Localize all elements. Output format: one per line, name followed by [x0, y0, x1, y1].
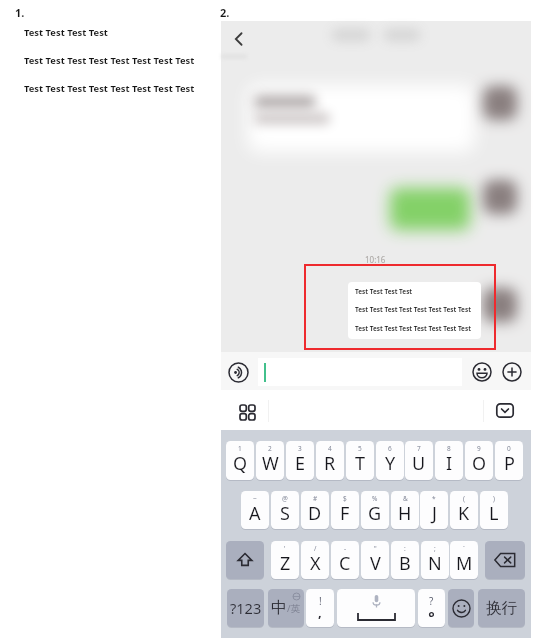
staticText: M — [456, 551, 473, 576]
button[interactable]: 4 — [316, 441, 344, 480]
staticText: 换行 — [486, 598, 517, 618]
button[interactable]: ) — [480, 491, 508, 529]
button[interactable]: Backspace — [485, 541, 525, 579]
staticText: B — [399, 551, 411, 576]
staticText: T — [355, 451, 366, 476]
staticText: ~ — [253, 494, 257, 503]
staticText: Test Test Test Test Test Test Test Test — [355, 324, 471, 333]
button[interactable]: 9 — [465, 441, 493, 480]
staticText: 9 — [477, 444, 481, 453]
button[interactable]: & — [391, 491, 419, 529]
staticText: I — [446, 451, 453, 476]
button[interactable]: 2 — [256, 441, 284, 480]
staticText: F — [340, 501, 350, 526]
staticText: % — [372, 494, 378, 503]
button[interactable]: Enter — [478, 589, 525, 627]
button[interactable]: 1 — [226, 441, 254, 480]
button[interactable]: % — [361, 491, 389, 529]
staticText: V — [370, 551, 381, 576]
button[interactable]: Switch language — [268, 589, 304, 627]
staticText: ? — [429, 594, 434, 608]
button[interactable]: 8 — [435, 441, 463, 480]
button[interactable]: Comma — [306, 589, 334, 627]
staticText: S — [280, 501, 290, 526]
button[interactable]: Emoji — [448, 589, 474, 627]
staticText: @ — [282, 494, 288, 503]
staticText: Test Test Test Test Test Test Test Test — [24, 54, 195, 67]
staticText: ( — [463, 494, 465, 503]
button[interactable]: ' — [271, 541, 299, 579]
staticText: /英 — [287, 602, 301, 615]
staticText: # — [313, 494, 318, 503]
staticText: 2 — [268, 444, 272, 453]
staticText: ; — [434, 544, 436, 553]
button[interactable]: 3 — [286, 441, 314, 480]
staticText: : — [404, 544, 406, 553]
button[interactable]: ( — [450, 491, 478, 529]
button[interactable] — [258, 358, 462, 386]
staticText: 5 — [358, 444, 362, 453]
button[interactable]: Space — [337, 589, 415, 627]
button[interactable]: : — [391, 541, 419, 579]
button[interactable]: More — [502, 362, 522, 382]
button[interactable]: 7 — [405, 441, 433, 480]
staticText: K — [458, 501, 470, 526]
button[interactable]: 0 — [495, 441, 523, 480]
staticText: 0 — [507, 444, 511, 453]
button[interactable]: @ — [271, 491, 299, 529]
button[interactable]: ` — [450, 541, 478, 579]
staticText: 10:16 — [365, 254, 386, 265]
button[interactable]: Hide keyboard — [496, 403, 514, 418]
button[interactable]: Emoji — [472, 362, 492, 382]
staticText: 1. — [15, 5, 25, 20]
button[interactable]: 5 — [346, 441, 374, 480]
staticText: " — [374, 544, 377, 553]
button[interactable]: Shift — [226, 541, 264, 579]
staticText: A — [249, 501, 261, 526]
staticText: 1 — [238, 444, 242, 453]
button[interactable]: / — [301, 541, 329, 579]
staticText: Test Test Test Test — [355, 287, 413, 296]
staticText: / — [314, 544, 317, 553]
staticText: U — [412, 451, 426, 476]
staticText: W — [262, 451, 279, 476]
staticText: H — [398, 501, 412, 526]
staticText: O — [472, 451, 487, 476]
staticText: Test Test Test Test — [24, 26, 108, 39]
button[interactable]: Back — [224, 24, 254, 54]
button[interactable]: " — [361, 541, 389, 579]
staticText: J — [432, 501, 437, 526]
button[interactable]: Apps — [240, 405, 255, 420]
button[interactable]: * — [420, 491, 448, 529]
staticText: ` — [463, 544, 465, 553]
staticText: * — [432, 494, 436, 503]
staticText: D — [308, 501, 322, 526]
staticText: P — [504, 451, 515, 476]
staticText: ?123 — [230, 598, 262, 618]
staticText: Test Test Test Test Test Test Test Test — [355, 305, 471, 314]
button[interactable]: ; — [421, 541, 449, 579]
button[interactable]: Numbers and symbols — [227, 589, 264, 627]
staticText: 6 — [388, 444, 392, 453]
button[interactable]: Voice input — [228, 362, 249, 383]
staticText: & — [403, 494, 408, 503]
staticText: 8 — [447, 444, 451, 453]
staticText: , — [318, 603, 322, 621]
button[interactable]: # — [301, 491, 329, 529]
staticText: $ — [343, 494, 347, 503]
staticText: - — [344, 544, 347, 553]
staticText: 中 — [271, 598, 287, 618]
button[interactable]: 6 — [376, 441, 404, 480]
staticText: R — [324, 451, 336, 476]
staticText: 3 — [298, 444, 302, 453]
button[interactable]: Period — [418, 589, 445, 627]
staticText: Z — [280, 551, 291, 576]
staticText: X — [310, 551, 321, 576]
button[interactable]: $ — [331, 491, 359, 529]
staticText: E — [295, 451, 306, 476]
button[interactable]: - — [331, 541, 359, 579]
staticText: ! — [319, 594, 322, 608]
staticText: ) — [493, 494, 495, 503]
staticText: 2. — [220, 5, 230, 20]
button[interactable]: ~ — [241, 491, 269, 529]
